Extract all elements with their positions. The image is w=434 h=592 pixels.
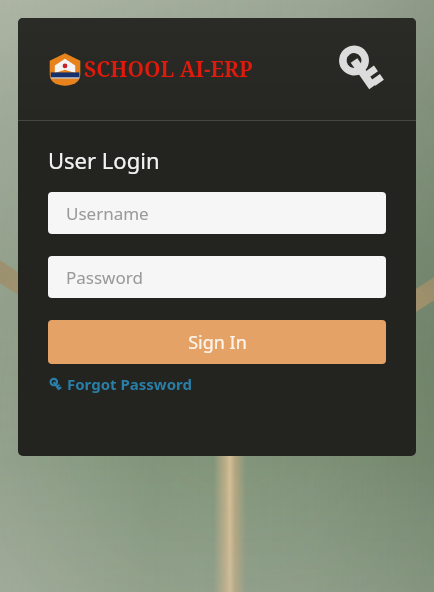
staticText: User Login [48, 145, 160, 175]
staticText: Username [66, 202, 149, 225]
button[interactable]: Password [48, 256, 386, 298]
button[interactable]: Username [48, 192, 386, 234]
staticText: Password [66, 266, 143, 289]
staticText: Forgot Password [67, 374, 192, 394]
button[interactable]: Key [332, 41, 388, 97]
button[interactable]: Forgot Password [48, 374, 192, 394]
button[interactable]: Sign In [48, 320, 386, 364]
staticText: SCHOOL AI-ERP [84, 55, 253, 84]
staticText: Sign In [188, 330, 247, 355]
